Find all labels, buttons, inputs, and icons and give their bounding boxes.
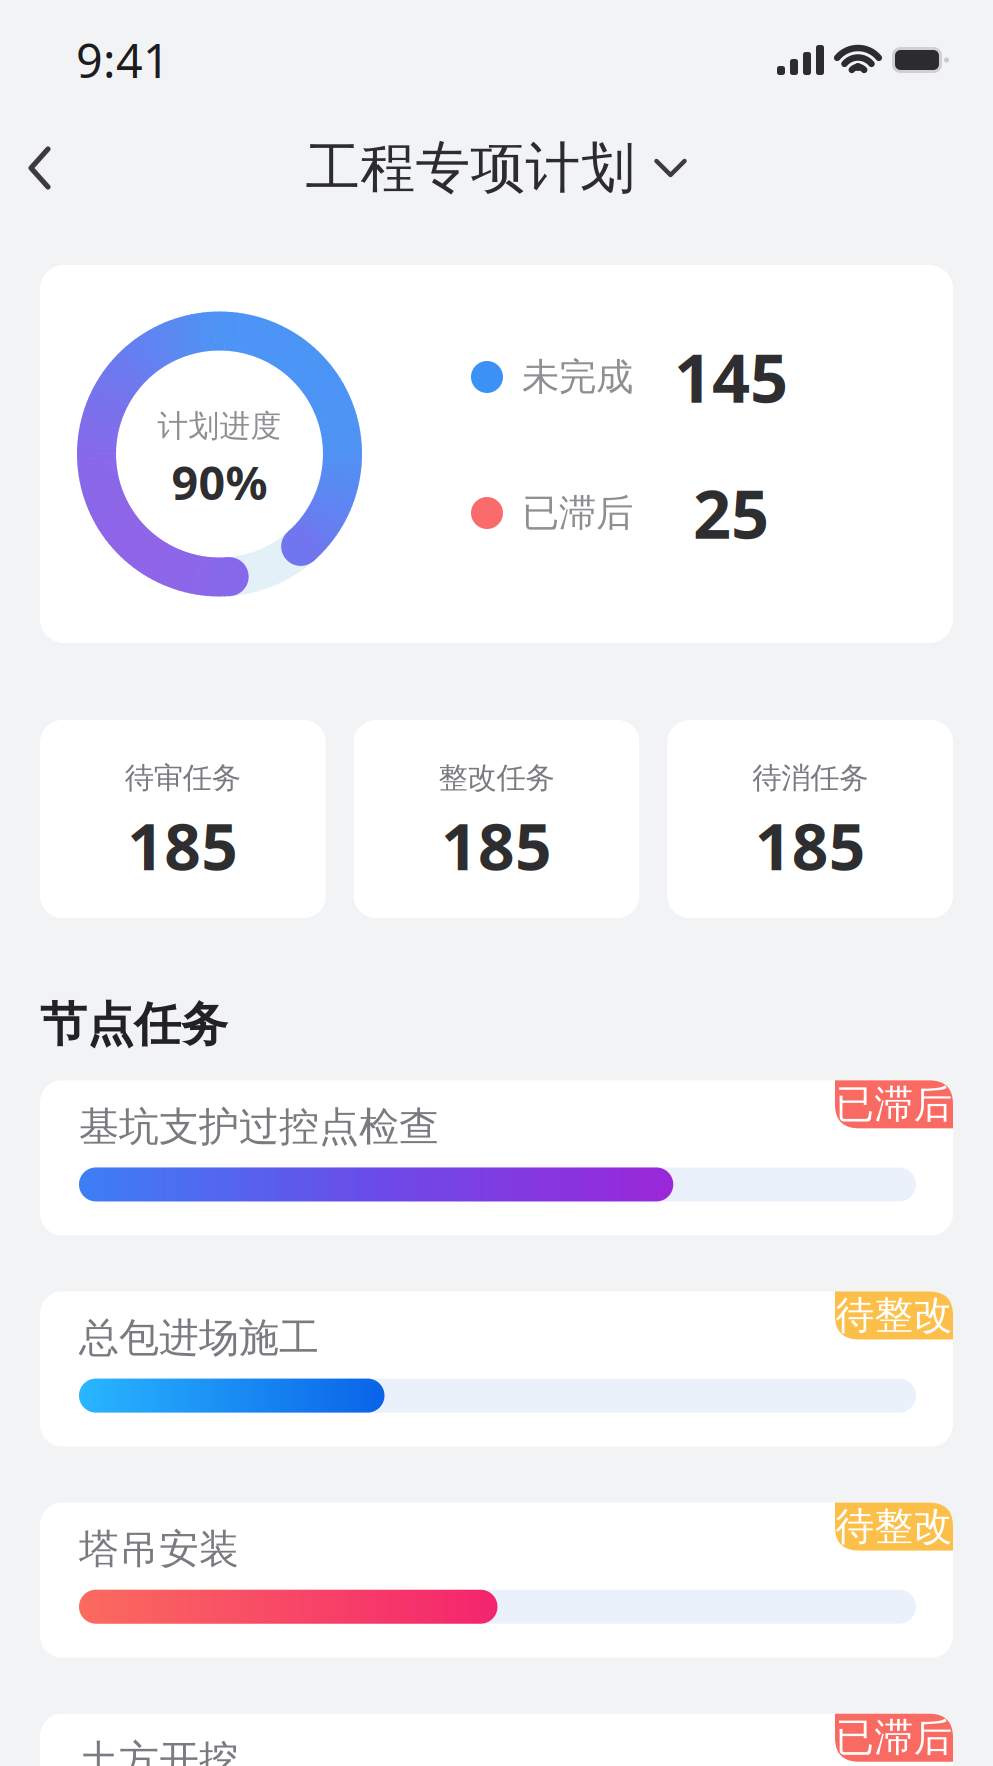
button[interactable]: Back (0, 131, 80, 205)
staticText: 90% (171, 451, 267, 513)
staticText: 已滞后 (835, 1714, 952, 1761)
staticText: 已滞后 (522, 490, 633, 536)
staticText: 185 (441, 803, 552, 888)
staticText: 塔吊安装 (79, 1525, 239, 1574)
button[interactable]: 总包进场施工 (40, 1291, 953, 1447)
staticText: 节点任务 (40, 996, 228, 1053)
staticText: 已滞后 (835, 1081, 952, 1128)
staticText: 9:41 (76, 29, 170, 91)
staticText: 整改任务 (438, 760, 554, 796)
staticText: 总包进场施工 (79, 1313, 319, 1363)
staticText: 25 (693, 469, 769, 557)
staticText: 待整改 (835, 1292, 952, 1339)
staticText: 待消任务 (752, 760, 868, 796)
staticText: 计划进度 (157, 407, 281, 445)
staticText: 土方开挖 (79, 1736, 239, 1766)
staticText: 待审任务 (125, 760, 241, 796)
button[interactable]: 基坑支护过控点检查 (40, 1080, 953, 1235)
staticText: 185 (755, 803, 866, 888)
button[interactable]: 整改任务 (354, 720, 639, 918)
staticText: 185 (127, 803, 238, 888)
staticText: 待整改 (835, 1503, 952, 1550)
staticText: 145 (674, 333, 788, 421)
button[interactable]: 待审任务 (40, 720, 326, 918)
button[interactable]: 塔吊安装 (40, 1503, 953, 1658)
staticText: 工程专项计划 (305, 134, 635, 201)
staticText: 未完成 (522, 354, 633, 400)
button[interactable]: 待消任务 (667, 720, 953, 918)
button[interactable]: 工程专项计划 (295, 126, 697, 209)
staticText: 基坑支护过控点检查 (79, 1102, 439, 1151)
button[interactable]: 土方开挖 (40, 1714, 953, 1766)
